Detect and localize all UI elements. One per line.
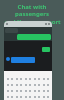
staticText: Chat with passengers <box>2 3 62 18</box>
staticText: and Yango support <box>4 18 61 26</box>
